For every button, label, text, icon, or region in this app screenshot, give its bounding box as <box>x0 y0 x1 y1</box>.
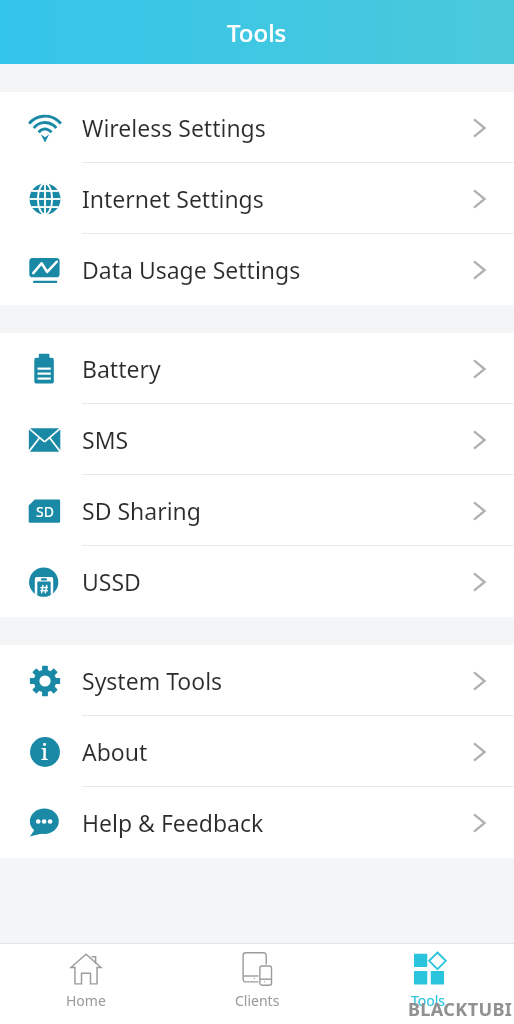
button[interactable]: Internet Settings <box>0 163 514 234</box>
staticText: Clients <box>235 991 280 1010</box>
staticText: Help & Feedback <box>82 807 264 838</box>
staticText: Internet Settings <box>82 183 264 214</box>
staticText: About <box>82 736 148 767</box>
button[interactable]: Tools <box>343 944 514 1024</box>
staticText: Tools <box>411 991 446 1010</box>
button[interactable]: Clients <box>172 944 343 1024</box>
button[interactable]: i <box>0 716 514 787</box>
button[interactable]: SMS <box>0 404 514 475</box>
staticText: Wireless Settings <box>82 112 266 143</box>
staticText: Battery <box>82 353 161 384</box>
staticText: BLACKTUBI <box>408 997 513 1022</box>
button[interactable]: SD <box>0 475 514 546</box>
button[interactable]: Help & Feedback <box>0 787 514 858</box>
staticText: Home <box>66 991 106 1010</box>
staticText: USSD <box>82 566 141 597</box>
button[interactable]: Home <box>0 944 172 1024</box>
button[interactable]: System Tools <box>0 645 514 716</box>
staticText: Data Usage Settings <box>82 254 301 285</box>
button[interactable]: USSD <box>0 546 514 617</box>
staticText: Tools <box>227 16 287 49</box>
staticText: i <box>41 736 49 766</box>
staticText: SMS <box>82 424 129 455</box>
staticText: SD <box>36 502 54 521</box>
staticText: SD Sharing <box>82 495 201 526</box>
staticText: System Tools <box>82 665 223 696</box>
button[interactable]: Battery <box>0 333 514 404</box>
button[interactable]: Data Usage Settings <box>0 234 514 305</box>
button[interactable]: Wireless Settings <box>0 92 514 163</box>
